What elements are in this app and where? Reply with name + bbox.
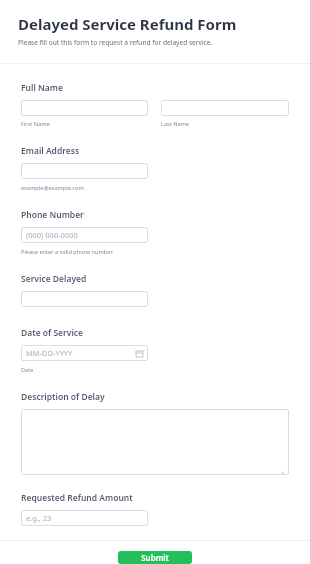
staticText: Last Name (161, 120, 189, 128)
staticText: Date of Service (21, 327, 84, 339)
staticText: Phone Number (21, 209, 84, 221)
staticText: Requested Refund Amount (21, 492, 133, 504)
staticText: MM-DD-YYYY (26, 348, 73, 358)
button[interactable] (21, 100, 148, 116)
staticText: Please fill out this form to request a r… (18, 38, 213, 47)
button[interactable]: MM-DD-YYYY (21, 345, 148, 361)
button[interactable] (21, 291, 148, 307)
staticText: example@example.com (21, 184, 84, 192)
staticText: Full Name (21, 82, 63, 94)
staticText: Date (21, 366, 34, 374)
button[interactable]: (000) 000-0000 (21, 227, 148, 243)
staticText: Description of Delay (21, 391, 105, 403)
button[interactable] (21, 409, 289, 475)
button[interactable] (161, 100, 289, 116)
staticText: Please enter a valid phone number. (21, 248, 114, 256)
button[interactable]: Submit (118, 551, 192, 564)
button[interactable] (21, 163, 148, 179)
staticText: Delayed Service Refund Form (18, 14, 237, 34)
staticText: Email Address (21, 145, 80, 157)
staticText: Service Delayed (21, 273, 87, 285)
staticText: Submit (141, 552, 169, 563)
button[interactable]: e.g., 23 (21, 510, 148, 526)
staticText: (000) 000-0000 (26, 230, 78, 240)
staticText: e.g., 23 (26, 513, 52, 523)
staticText: First Name (21, 120, 50, 128)
